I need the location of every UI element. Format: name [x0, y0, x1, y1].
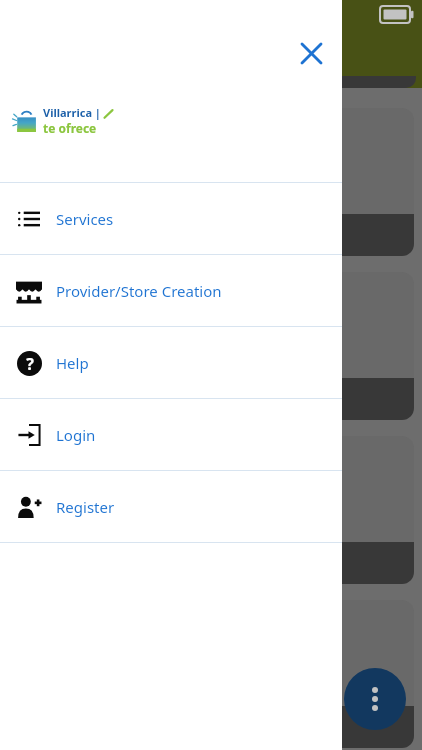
staticText: Provider/Store Creation	[56, 281, 222, 301]
button[interactable]: ?	[0, 327, 342, 398]
staticText: Services	[56, 209, 114, 229]
staticText: Negocios	[22, 330, 158, 372]
button[interactable]: Close menu	[290, 32, 332, 74]
button[interactable]: Services	[0, 183, 342, 254]
staticText: ?	[26, 353, 34, 375]
staticText: te ofrece	[43, 120, 97, 136]
staticText: Help	[56, 353, 89, 373]
staticText: Servicios	[22, 166, 150, 208]
button[interactable]: Provider/Store Creation	[0, 255, 342, 326]
staticText: Register	[56, 497, 115, 517]
button[interactable]: Register	[0, 471, 342, 542]
staticText: Lugares	[22, 494, 139, 536]
staticText: Villarrica |	[43, 105, 101, 120]
button[interactable]: More options	[344, 668, 406, 730]
staticText: Login	[56, 425, 96, 445]
button[interactable]: Login	[0, 399, 342, 470]
